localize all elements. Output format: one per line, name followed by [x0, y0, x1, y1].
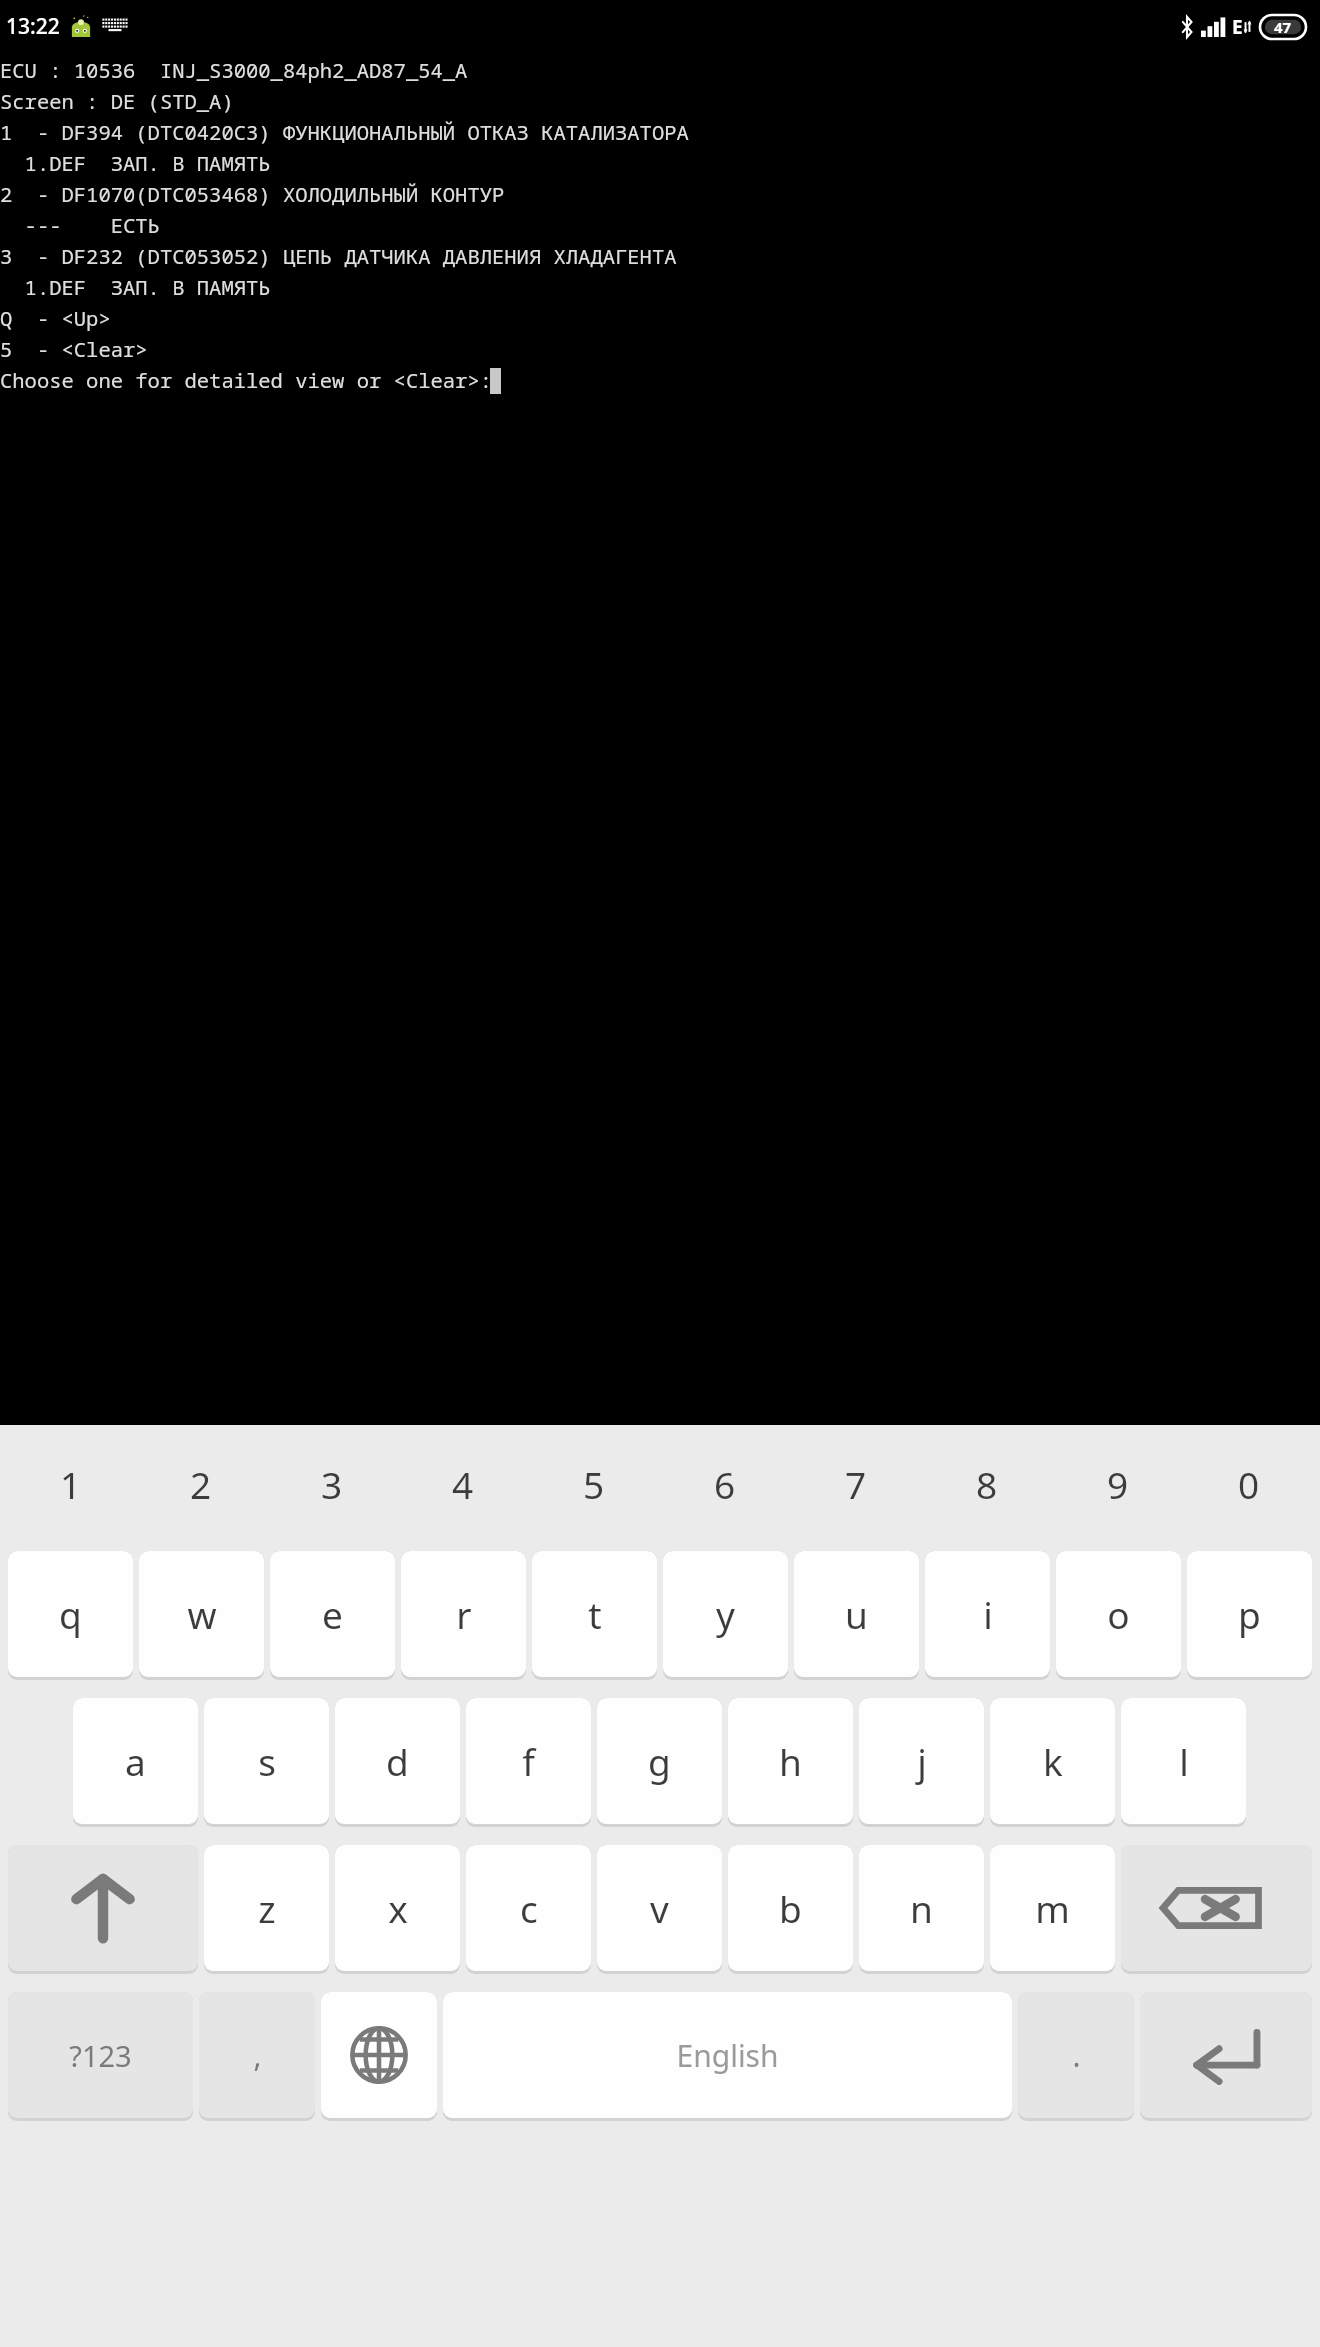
staticText: 2 — [190, 1459, 212, 1509]
button[interactable]: 3 — [266, 1425, 397, 1542]
staticText: 7 — [845, 1459, 867, 1509]
staticText: 1 — [60, 1459, 82, 1509]
staticText: r — [456, 1589, 472, 1639]
button[interactable]: b — [728, 1845, 853, 1971]
staticText: c — [520, 1883, 538, 1933]
staticText: 2 - DF1070(DTC053468) ХОЛОДИЛЬНЫЙ КОНТУР — [0, 180, 505, 211]
button[interactable]: s — [204, 1698, 329, 1824]
staticText: g — [648, 1736, 671, 1786]
button[interactable]: n — [859, 1845, 984, 1971]
staticText: t — [588, 1589, 602, 1639]
button[interactable]: 5 — [528, 1425, 659, 1542]
staticText: 47 — [1274, 17, 1292, 37]
staticText: E — [1232, 14, 1243, 40]
staticText: --- ЕСТЬ — [0, 211, 160, 242]
staticText: x — [388, 1883, 408, 1933]
staticText: 3 - DF232 (DTC053052) ЦЕПЬ ДАТЧИКА ДАВЛЕ… — [0, 242, 677, 273]
staticText: j — [917, 1736, 927, 1786]
button[interactable]: i — [925, 1551, 1050, 1677]
staticText: 1 - DF394 (DTC0420C3) ФУНКЦИОНАЛЬНЫЙ ОТК… — [0, 118, 689, 149]
staticText: m — [1035, 1883, 1070, 1933]
button[interactable]: u — [794, 1551, 919, 1677]
staticText: Screen : DE (STD_A) — [0, 87, 234, 118]
staticText: ECU : 10536 INJ_S3000_84ph2_AD87_54_A — [0, 56, 468, 87]
button[interactable]: k — [990, 1698, 1115, 1824]
staticText: Choose one for detailed view or <Clear>: — [0, 366, 492, 397]
staticText: 5 — [583, 1459, 605, 1509]
staticText: 8 — [976, 1459, 998, 1509]
button[interactable]: c — [466, 1845, 591, 1971]
staticText: e — [322, 1589, 343, 1639]
staticText: p — [1238, 1589, 1261, 1639]
staticText: f — [522, 1736, 535, 1786]
button[interactable]: Backspace — [1121, 1845, 1312, 1971]
button[interactable]: r — [401, 1551, 526, 1677]
button[interactable]: h — [728, 1698, 853, 1824]
staticText: 9 — [1107, 1459, 1129, 1509]
button[interactable]: 1 — [6, 1425, 136, 1542]
staticText: 1.DEF ЗАП. В ПАМЯТЬ — [0, 273, 271, 304]
staticText: ?123 — [69, 2036, 132, 2075]
button[interactable]: 2 — [136, 1425, 266, 1542]
staticText: l — [1179, 1736, 1189, 1786]
button[interactable]: 9 — [1052, 1425, 1183, 1542]
button[interactable]: t — [532, 1551, 657, 1677]
button[interactable]: w — [139, 1551, 264, 1677]
button[interactable]: p — [1187, 1551, 1312, 1677]
button[interactable]: English — [443, 1992, 1012, 2118]
button[interactable]: Enter — [1140, 1992, 1312, 2118]
button[interactable]: q — [8, 1551, 133, 1677]
staticText: z — [258, 1883, 276, 1933]
staticText: . — [1072, 2035, 1081, 2076]
button[interactable]: Shift — [8, 1845, 198, 1971]
button[interactable]: a — [73, 1698, 198, 1824]
staticText: n — [910, 1883, 933, 1933]
staticText: u — [845, 1589, 868, 1639]
staticText: s — [258, 1736, 276, 1786]
button[interactable]: f — [466, 1698, 591, 1824]
button[interactable]: j — [859, 1698, 984, 1824]
button[interactable]: m — [990, 1845, 1115, 1971]
staticText: 4 — [452, 1459, 474, 1509]
button[interactable]: y — [663, 1551, 788, 1677]
button[interactable]: v — [597, 1845, 722, 1971]
staticText: 6 — [714, 1459, 736, 1509]
button[interactable]: Change keyboard language — [321, 1992, 437, 2118]
staticText: v — [650, 1883, 669, 1933]
staticText: 13:22 — [6, 12, 60, 41]
staticText: 0 — [1238, 1459, 1260, 1509]
staticText: d — [386, 1736, 409, 1786]
button[interactable]: 7 — [790, 1425, 921, 1542]
staticText: y — [716, 1589, 735, 1639]
staticText: h — [779, 1736, 802, 1786]
button[interactable]: o — [1056, 1551, 1181, 1677]
button[interactable]: d — [335, 1698, 460, 1824]
button[interactable]: , — [199, 1992, 315, 2118]
staticText: k — [1043, 1736, 1063, 1786]
button[interactable]: ?123 — [8, 1992, 193, 2118]
button[interactable]: g — [597, 1698, 722, 1824]
staticText: w — [187, 1589, 217, 1639]
button[interactable]: x — [335, 1845, 460, 1971]
staticText: a — [125, 1736, 146, 1786]
staticText: i — [983, 1589, 993, 1639]
button[interactable]: z — [204, 1845, 329, 1971]
staticText: Q - <Up> — [0, 304, 111, 335]
button[interactable]: 8 — [921, 1425, 1052, 1542]
staticText: b — [779, 1883, 802, 1933]
staticText: , — [253, 2035, 262, 2076]
button[interactable]: 6 — [659, 1425, 790, 1542]
staticText: 5 - <Clear> — [0, 335, 148, 366]
staticText: English — [676, 2035, 779, 2076]
button[interactable]: e — [270, 1551, 395, 1677]
staticText: 1.DEF ЗАП. В ПАМЯТЬ — [0, 149, 271, 180]
button[interactable]: 4 — [397, 1425, 528, 1542]
staticText: 3 — [321, 1459, 343, 1509]
staticText: o — [1107, 1589, 1130, 1639]
staticText: q — [59, 1589, 82, 1639]
button[interactable]: l — [1121, 1698, 1246, 1824]
button[interactable]: 0 — [1183, 1425, 1314, 1542]
